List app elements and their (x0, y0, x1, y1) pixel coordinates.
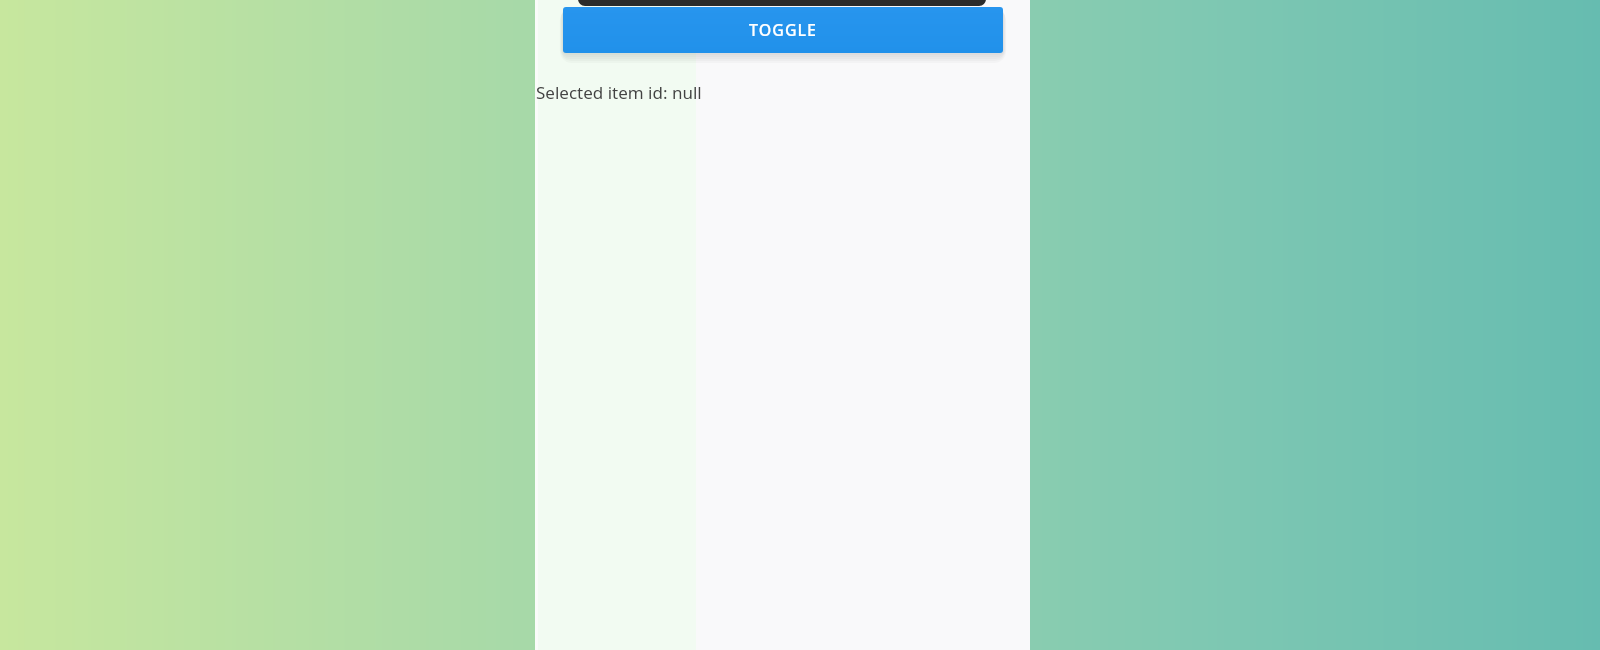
staticText: Selected item id: null (536, 81, 702, 104)
staticText: TOGGLE (749, 19, 817, 41)
button[interactable]: TOGGLE (563, 7, 1003, 53)
